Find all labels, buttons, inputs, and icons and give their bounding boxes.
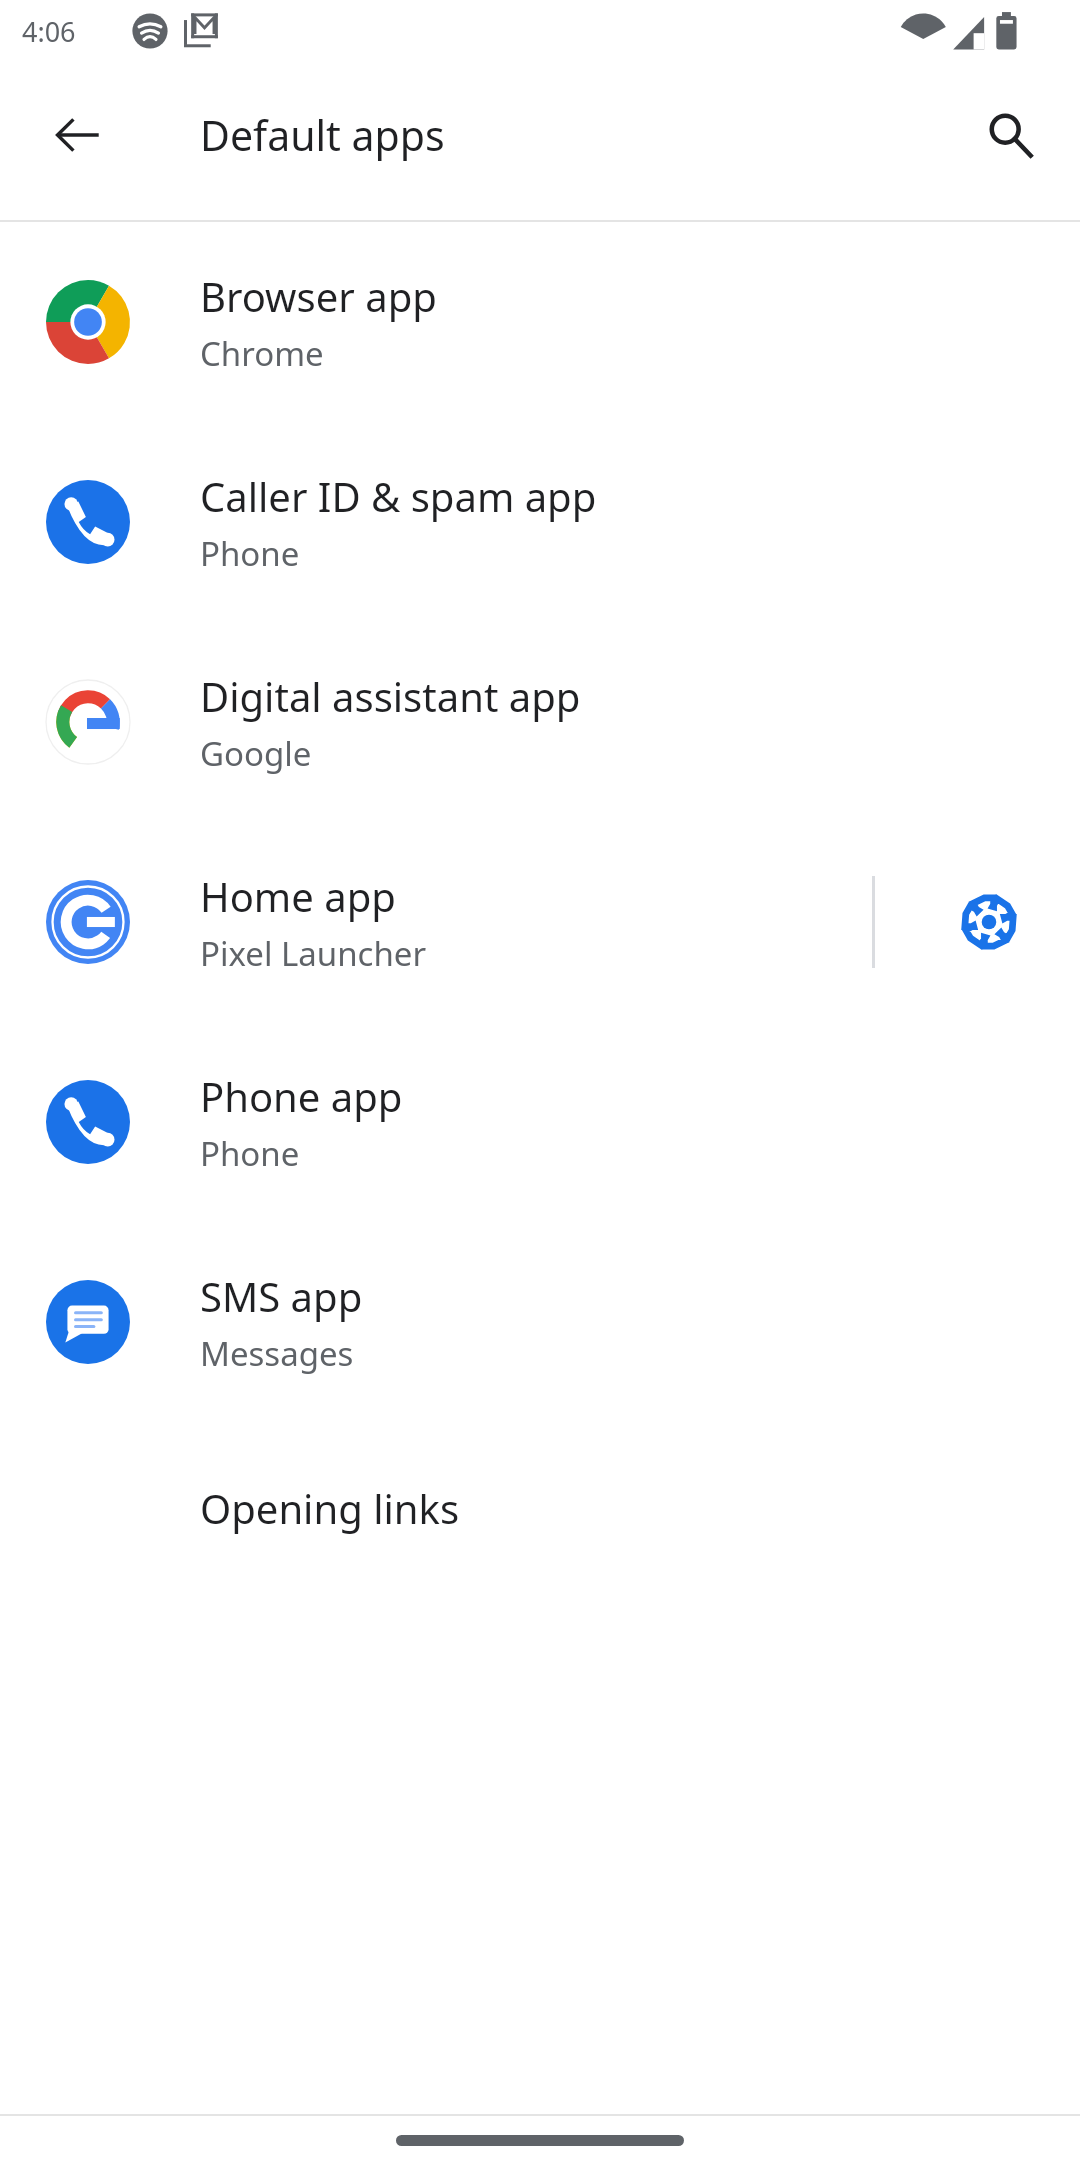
button[interactable]: Browser app — [0, 222, 1080, 422]
staticText: Default apps — [200, 107, 445, 163]
staticText: Browser app — [200, 269, 437, 323]
staticText: Digital assistant app — [200, 669, 581, 723]
staticText: Google — [200, 731, 312, 776]
button[interactable]: Digital assistant app — [0, 622, 1080, 822]
button[interactable]: Opening links — [0, 1422, 1080, 1594]
button[interactable]: Phone app — [0, 1022, 1080, 1222]
staticText: Caller ID & spam app — [200, 469, 597, 523]
button[interactable]: Caller ID & spam app — [0, 422, 1080, 622]
staticText: Pixel Launcher — [200, 931, 427, 976]
staticText: Phone — [200, 531, 300, 576]
staticText: Messages — [200, 1331, 354, 1376]
button[interactable]: Home app — [0, 822, 1080, 1022]
button[interactable]: Home app settings — [929, 862, 1049, 982]
staticText: Phone app — [200, 1069, 403, 1123]
button[interactable]: Search — [954, 79, 1066, 191]
staticText: Opening links — [200, 1481, 460, 1535]
staticText: Chrome — [200, 331, 324, 376]
staticText: 4:06 — [22, 13, 76, 50]
staticText: Home app — [200, 869, 396, 923]
button[interactable]: SMS app — [0, 1222, 1080, 1422]
staticText: SMS app — [200, 1269, 363, 1323]
button[interactable]: Back — [22, 79, 134, 191]
staticText: Phone — [200, 1131, 300, 1176]
